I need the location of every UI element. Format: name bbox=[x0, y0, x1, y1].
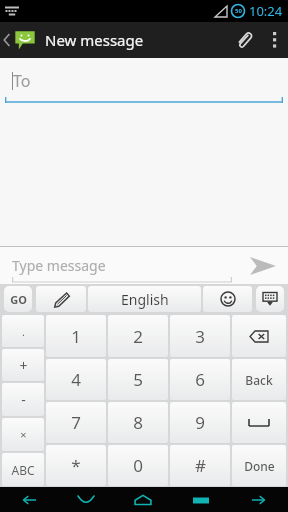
staticText: 3 bbox=[195, 325, 205, 348]
button[interactable]: GO bbox=[4, 286, 32, 312]
staticText: 7 bbox=[71, 411, 81, 434]
staticText: - bbox=[21, 390, 26, 409]
button[interactable]: Home bbox=[114, 487, 172, 512]
button[interactable]: # bbox=[170, 445, 230, 486]
button[interactable]: Forward bbox=[230, 487, 288, 512]
button[interactable]: 7 bbox=[46, 402, 106, 443]
staticText: Done bbox=[244, 458, 275, 474]
staticText: 2 bbox=[133, 325, 143, 348]
button[interactable]: 8 bbox=[108, 402, 168, 443]
button[interactable]: English bbox=[88, 286, 201, 312]
button[interactable]: - bbox=[2, 383, 44, 416]
button[interactable]: Type message bbox=[12, 247, 232, 284]
staticText: 10:24 bbox=[249, 2, 283, 20]
staticText: * bbox=[71, 454, 81, 477]
button[interactable] bbox=[36, 286, 86, 312]
staticText: . bbox=[22, 324, 25, 339]
staticText: 50 bbox=[235, 7, 242, 15]
staticText: ABC bbox=[11, 462, 35, 478]
staticText: To bbox=[13, 70, 31, 92]
button[interactable]: 2 bbox=[108, 315, 168, 357]
button[interactable]: Navigate up bbox=[0, 22, 40, 58]
staticText: 8 bbox=[133, 411, 143, 434]
button[interactable]: Hide bbox=[57, 487, 114, 512]
button[interactable]: * bbox=[46, 445, 106, 486]
button[interactable]: Back bbox=[0, 487, 57, 512]
staticText: 6 bbox=[195, 368, 205, 391]
button[interactable]: 1 bbox=[46, 315, 106, 357]
button[interactable]: Hide keyboard bbox=[256, 286, 284, 312]
staticText: GO bbox=[10, 292, 27, 307]
button[interactable]: + bbox=[2, 349, 44, 381]
button[interactable]: Space bbox=[232, 402, 286, 443]
staticText: 4 bbox=[71, 368, 81, 391]
button[interactable]: 0 bbox=[108, 445, 168, 486]
staticText: 0 bbox=[133, 454, 143, 477]
button[interactable]: ABC bbox=[2, 453, 44, 486]
button[interactable]: Recent apps bbox=[172, 487, 230, 512]
staticText: 1 bbox=[71, 325, 81, 348]
button[interactable]: Send bbox=[238, 247, 288, 284]
staticText: × bbox=[20, 427, 27, 442]
button[interactable]: 5 bbox=[108, 359, 168, 400]
button[interactable]: Back bbox=[232, 359, 286, 400]
button[interactable]: More options bbox=[262, 22, 288, 58]
staticText: English bbox=[121, 290, 169, 309]
staticText: 9 bbox=[195, 411, 205, 434]
button[interactable]: 6 bbox=[170, 359, 230, 400]
button[interactable]: 4 bbox=[46, 359, 106, 400]
button[interactable] bbox=[203, 286, 252, 312]
staticText: Type message bbox=[12, 256, 106, 275]
button[interactable]: × bbox=[2, 418, 44, 451]
staticText: New message bbox=[45, 30, 144, 50]
staticText: 5 bbox=[133, 368, 143, 391]
button[interactable]: Attach bbox=[226, 22, 262, 58]
button[interactable]: 3 bbox=[170, 315, 230, 357]
button[interactable]: Delete bbox=[232, 315, 286, 357]
button[interactable]: 9 bbox=[170, 402, 230, 443]
button[interactable]: Done bbox=[232, 445, 286, 486]
staticText: + bbox=[19, 356, 28, 375]
staticText: # bbox=[195, 454, 206, 477]
button[interactable]: . bbox=[2, 315, 44, 347]
staticText: Back bbox=[245, 372, 273, 388]
